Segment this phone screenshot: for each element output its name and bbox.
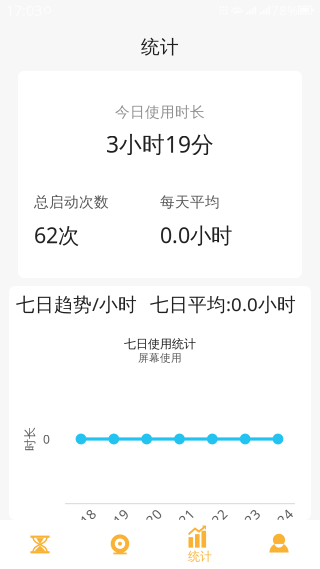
staticText: 七日平均:0.0小时 [150, 292, 296, 316]
button[interactable]: Focus [80, 520, 160, 569]
button[interactable]: Profile [240, 520, 320, 569]
staticText: 七日趋势/小时 [16, 292, 137, 316]
staticText: 统计 [188, 549, 212, 564]
staticText: 屏幕使用 [138, 351, 182, 364]
button[interactable]: Timer [0, 520, 80, 569]
staticText: 08-19 [96, 515, 132, 533]
staticText: 今日使用时长 [115, 103, 205, 121]
staticText: 0.0小时 [160, 221, 232, 249]
button[interactable]: Statistics [160, 520, 240, 569]
staticText: 3小时19分 [106, 129, 214, 159]
staticText: 总启动次数 [34, 193, 109, 211]
staticText: 62次 [34, 221, 79, 249]
staticText: 统计 [141, 35, 179, 58]
staticText: 08-23 [227, 515, 263, 533]
staticText: 08-24 [260, 515, 296, 533]
staticText: 0 [43, 431, 50, 447]
staticText: 08-20 [129, 515, 165, 533]
staticText: 七日使用统计 [124, 337, 196, 351]
staticText: 时长 [18, 432, 42, 446]
staticText: 08-22 [194, 515, 230, 533]
staticText: 每天平均 [160, 193, 220, 211]
staticText: 08-21 [161, 515, 197, 533]
staticText: 08-18 [63, 515, 99, 533]
